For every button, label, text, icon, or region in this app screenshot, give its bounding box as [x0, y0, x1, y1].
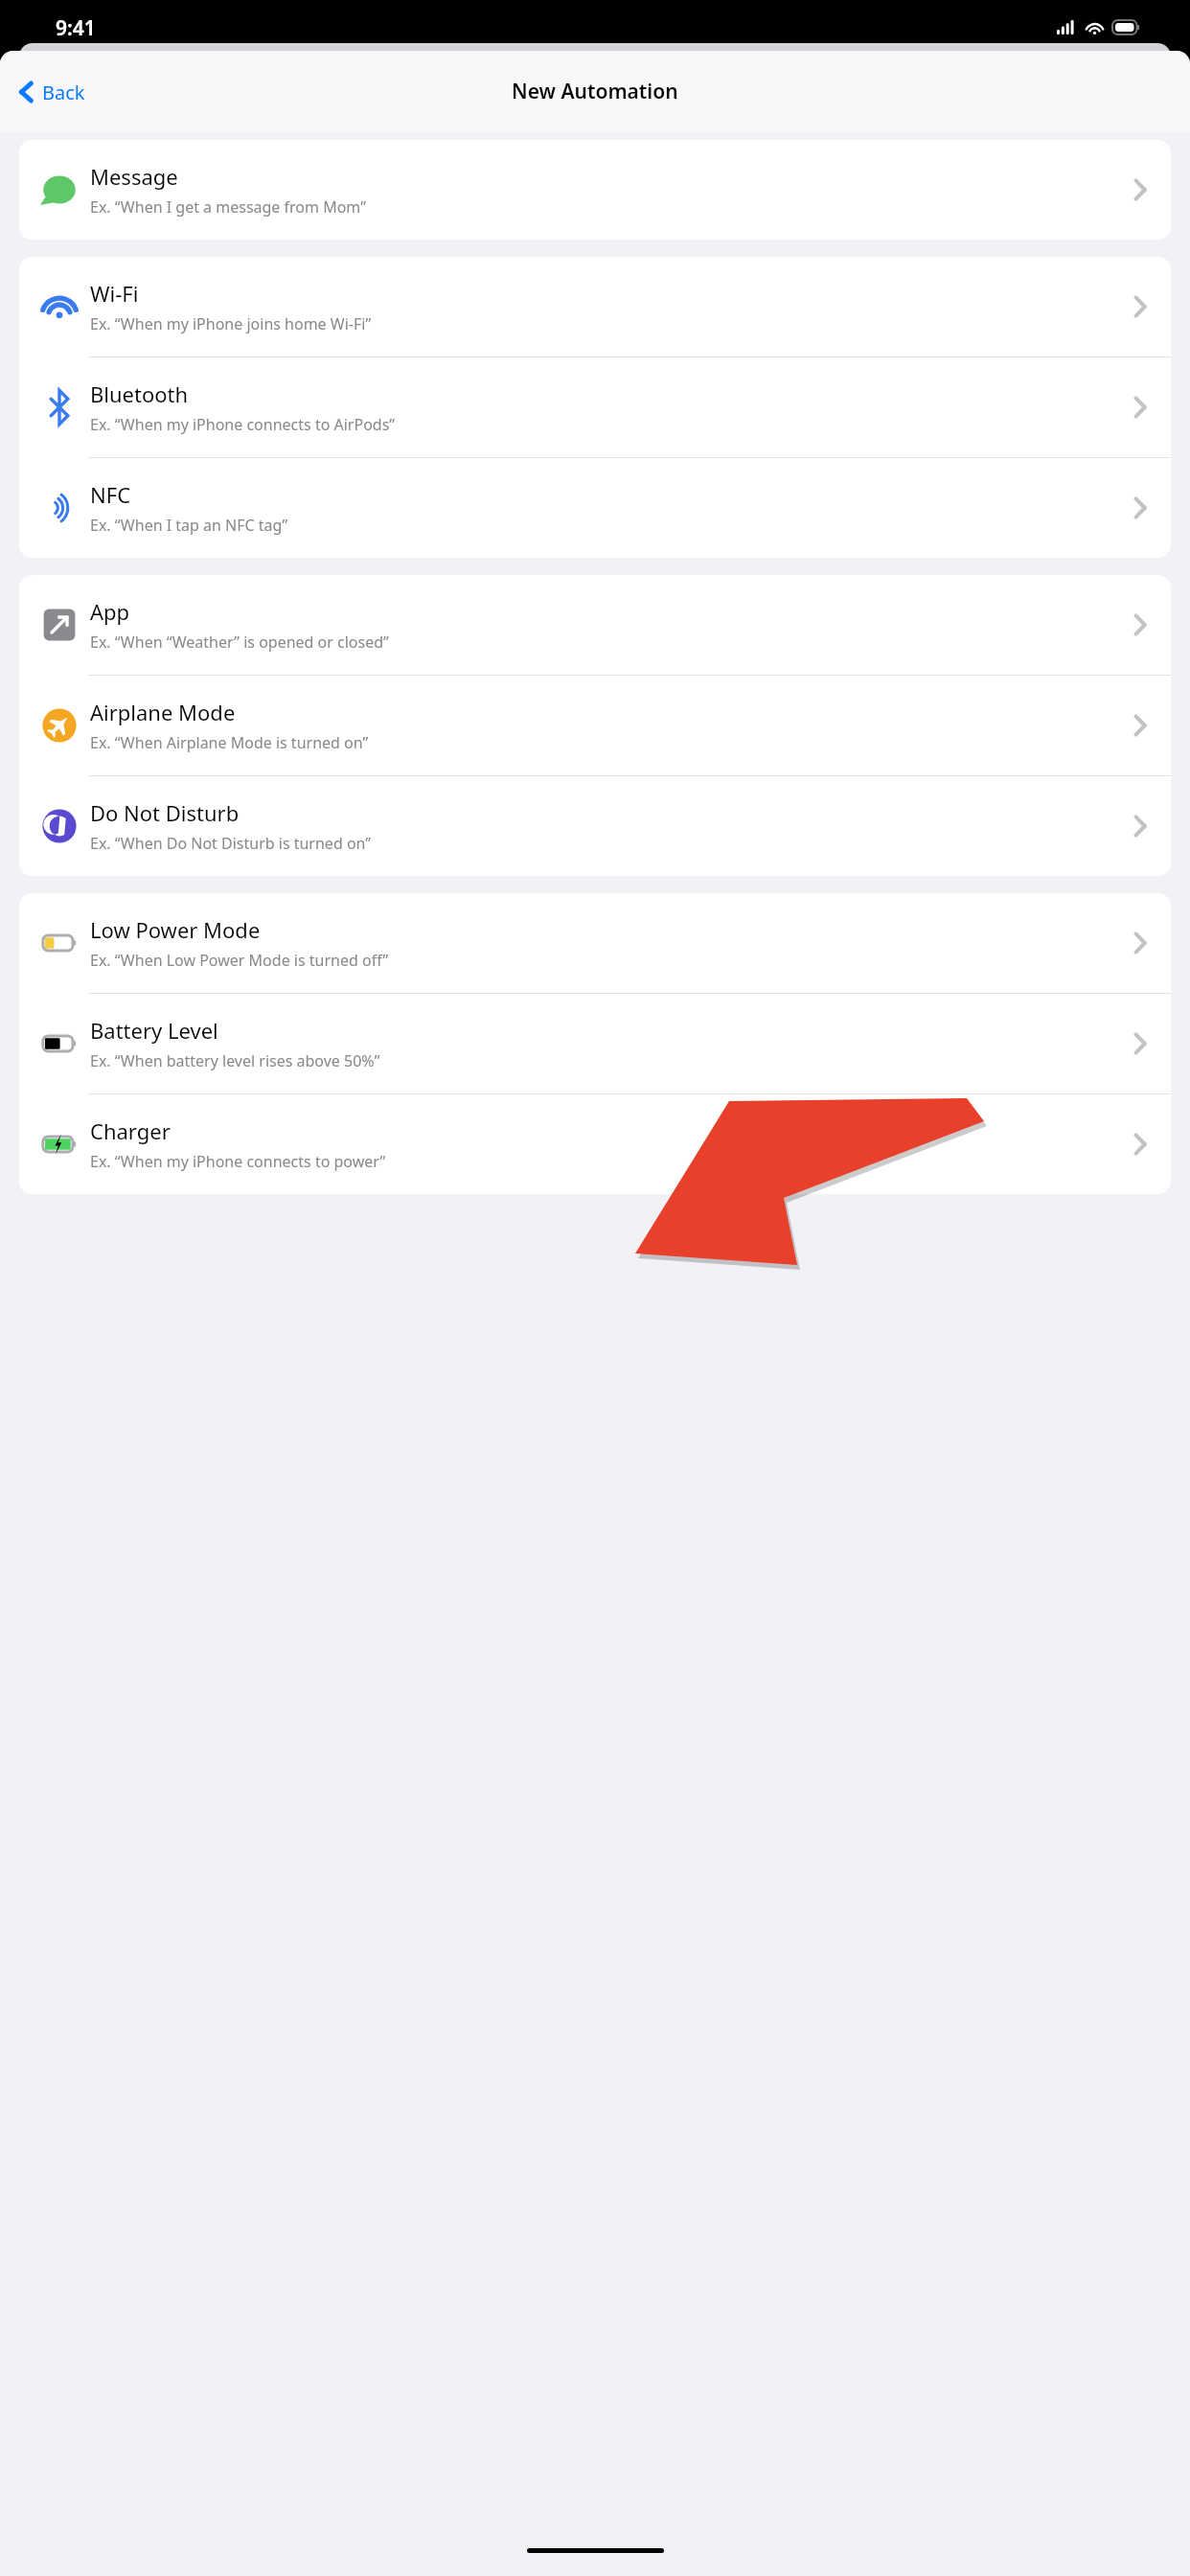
staticText: Do Not Disturb — [90, 798, 240, 827]
staticText: NFC — [90, 480, 131, 509]
button[interactable]: Do Not Disturb — [19, 776, 1171, 876]
staticText: Airplane Mode — [90, 698, 236, 726]
staticText: App — [90, 597, 130, 626]
staticText: Bluetooth — [90, 379, 189, 408]
button[interactable]: NFC — [19, 458, 1171, 558]
staticText: Back — [42, 80, 85, 105]
staticText: New Automation — [512, 78, 678, 105]
staticText: Charger — [90, 1116, 171, 1145]
staticText: Ex. “When Do Not Disturb is turned on” — [90, 833, 372, 854]
staticText: Wi-Fi — [90, 279, 139, 308]
staticText: Ex. “When Low Power Mode is turned off” — [90, 950, 389, 971]
button[interactable]: Charger — [19, 1094, 1171, 1194]
button[interactable]: Low Power Mode — [19, 893, 1171, 993]
button[interactable]: Back — [11, 72, 91, 112]
button[interactable]: Battery Level — [19, 994, 1171, 1093]
staticText: Ex. “When battery level rises above 50%” — [90, 1050, 380, 1071]
staticText: 9:41 — [56, 14, 96, 42]
staticText: Ex. “When my iPhone connects to AirPods” — [90, 414, 396, 435]
staticText: Ex. “When my iPhone joins home Wi-Fi” — [90, 313, 372, 334]
button[interactable]: Airplane Mode — [19, 676, 1171, 775]
staticText: Battery Level — [90, 1016, 218, 1045]
button[interactable]: Message — [19, 140, 1171, 240]
button[interactable]: Wi-Fi — [19, 257, 1171, 356]
staticText: Ex. “When “Weather” is opened or closed” — [90, 632, 389, 653]
staticText: Ex. “When I tap an NFC tag” — [90, 515, 288, 536]
button[interactable]: Bluetooth — [19, 357, 1171, 457]
staticText: Low Power Mode — [90, 915, 261, 944]
staticText: Ex. “When I get a message from Mom” — [90, 196, 366, 218]
button[interactable]: App — [19, 575, 1171, 675]
staticText: Message — [90, 162, 178, 191]
staticText: Ex. “When Airplane Mode is turned on” — [90, 732, 369, 753]
staticText: Ex. “When my iPhone connects to power” — [90, 1151, 386, 1172]
